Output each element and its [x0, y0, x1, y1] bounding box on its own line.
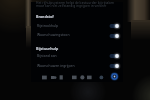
button[interactable]: On: [108, 22, 120, 30]
button[interactable]: [33, 31, 121, 40]
button[interactable]: Defrost: [84, 72, 94, 82]
staticText: Bijstuurhulp: [36, 46, 59, 51]
button[interactable]: Navigation: [96, 72, 106, 82]
button[interactable]: [33, 61, 121, 70]
staticText: Rijstrookhulp: [37, 23, 59, 28]
button[interactable]: [33, 22, 121, 31]
button[interactable]: Media: [48, 72, 58, 82]
button[interactable]: Phone: [56, 72, 66, 82]
button[interactable]: On: [108, 62, 120, 70]
button[interactable]: On: [108, 32, 120, 40]
staticText: Waarschuwingstoon: [37, 32, 70, 37]
staticText: Waarschuwen ingrijpen: [37, 63, 75, 68]
staticText: Brandstof: [36, 14, 54, 19]
button[interactable]: Seat heating: [77, 72, 87, 82]
button[interactable]: Climate: [69, 72, 79, 82]
button[interactable]: Apps: [39, 72, 49, 82]
staticText: Bijstand aan: [37, 53, 57, 58]
button[interactable]: On: [108, 52, 120, 60]
staticText: Het rijhulpsysteem helpt de bestuurder b…: [36, 0, 115, 8]
button[interactable]: Now playing: [110, 72, 119, 81]
button[interactable]: [33, 52, 121, 61]
